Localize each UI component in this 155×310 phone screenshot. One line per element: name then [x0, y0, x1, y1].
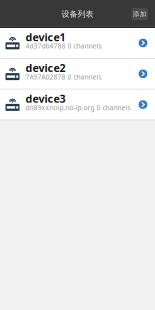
button[interactable]: 添加	[131, 8, 148, 20]
staticText: dn89xxnoip.no-ip.org 0 channels	[25, 103, 130, 112]
button[interactable]: device3	[0, 90, 155, 120]
staticText: 7A97A02878 0 channels	[25, 72, 101, 81]
button[interactable]: Open device details	[134, 96, 151, 113]
staticText: 4d37db4788 0 channels	[25, 42, 101, 50]
button[interactable]: device2	[0, 59, 155, 89]
button[interactable]: Open device details	[134, 34, 151, 51]
staticText: 设备列表	[61, 9, 93, 19]
staticText: device1	[25, 30, 65, 44]
button[interactable]: device1	[0, 28, 155, 58]
staticText: device2	[25, 61, 65, 75]
staticText: device3	[25, 91, 65, 106]
staticText: 添加	[133, 10, 147, 18]
button[interactable]: Open device details	[134, 65, 151, 82]
